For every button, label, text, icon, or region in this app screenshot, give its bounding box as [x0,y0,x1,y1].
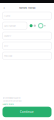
staticText: By continuing you agree [2,97,20,99]
staticText: Payment method [19,6,35,9]
staticText: Learn more [2,103,13,105]
button[interactable]: Continue [2,107,51,117]
staticText: Postcode [4,54,12,57]
staticText: Country [4,34,11,37]
staticText: Continue [20,110,34,114]
button[interactable]: Back [2,5,6,10]
staticText: Name [4,14,10,17]
staticText: Card number [4,24,16,27]
button[interactable]: Learn more [2,103,13,105]
staticText: City [4,44,8,47]
staticText: to the terms of service [2,100,21,102]
